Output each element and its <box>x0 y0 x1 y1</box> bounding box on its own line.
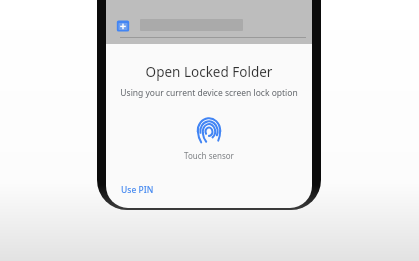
staticText: Touch sensor <box>106 150 312 161</box>
staticText: Open Locked Folder <box>106 63 312 81</box>
staticText: Using your current device screen lock op… <box>106 87 312 99</box>
button[interactable]: Use PIN <box>114 180 161 200</box>
staticText: Use PIN <box>121 184 154 196</box>
button[interactable]: Locked Folder <box>116 19 130 33</box>
button[interactable]: Fingerprint sensor <box>195 116 223 144</box>
